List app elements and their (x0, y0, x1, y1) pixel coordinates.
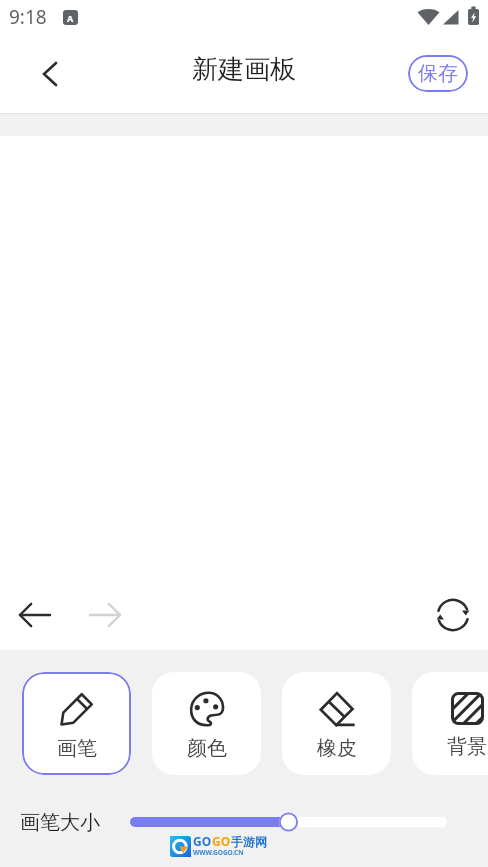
button[interactable]: 保存 (408, 55, 468, 92)
staticText: GO (212, 833, 231, 849)
button[interactable]: Back (26, 50, 74, 98)
button[interactable]: Undo (13, 593, 57, 637)
button[interactable]: 橡皮 (282, 672, 391, 775)
button[interactable]: 颜色 (152, 672, 261, 775)
staticText: 画笔 (57, 736, 97, 761)
staticText: 新建画板 (192, 53, 296, 86)
staticText: 保存 (418, 61, 458, 86)
staticText: 背景 (447, 734, 487, 759)
button[interactable]: Redo (83, 593, 127, 637)
staticText: 颜色 (187, 736, 227, 761)
staticText: 画笔大小 (20, 810, 100, 835)
staticText: GO (193, 833, 212, 849)
staticText: 9:18 (9, 4, 47, 30)
button[interactable]: 画笔 (22, 672, 131, 775)
staticText: 手游网 (231, 834, 267, 849)
button[interactable]: Reset (431, 593, 475, 637)
staticText: A (67, 12, 74, 24)
button[interactable]: 背景 (412, 672, 488, 775)
staticText: WWW.GOGO.CN (193, 848, 244, 856)
staticText: 橡皮 (317, 736, 357, 761)
